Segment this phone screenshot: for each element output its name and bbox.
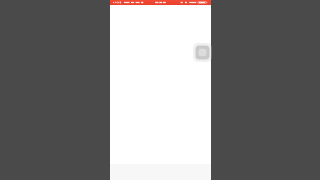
button[interactable]: Image placeholder (193, 43, 212, 62)
